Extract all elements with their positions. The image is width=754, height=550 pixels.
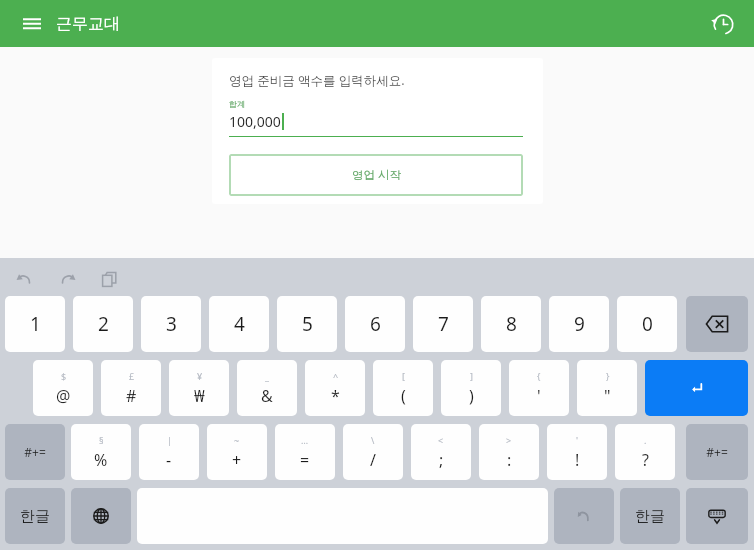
staticText: >: [506, 434, 512, 446]
staticText: |: [167, 434, 172, 446]
staticText: ₩: [194, 385, 205, 407]
staticText: 영업 준비금 액수를 입력하세요.: [229, 72, 405, 89]
staticText: ~: [234, 434, 240, 446]
button[interactable]: ]: [441, 360, 501, 416]
staticText: (: [401, 385, 406, 407]
staticText: 7: [438, 311, 449, 337]
button[interactable]: History: [702, 3, 744, 45]
staticText: ¥: [197, 370, 203, 382]
button[interactable]: 7: [413, 296, 473, 352]
staticText: 5: [302, 311, 313, 337]
button[interactable]: #+=: [5, 424, 65, 480]
button[interactable]: …: [275, 424, 335, 480]
button[interactable]: ^: [305, 360, 365, 416]
staticText: <: [438, 434, 444, 446]
staticText: #+=: [706, 444, 728, 460]
staticText: 합계: [229, 99, 245, 109]
staticText: :: [507, 449, 512, 471]
staticText: ;: [439, 449, 444, 471]
button[interactable]: .: [615, 424, 675, 480]
staticText: \: [371, 434, 375, 446]
button[interactable]: 2: [73, 296, 133, 352]
staticText: -: [166, 449, 172, 471]
staticText: *: [331, 385, 340, 407]
button[interactable]: 3: [141, 296, 201, 352]
staticText: &: [261, 385, 273, 407]
staticText: 1: [30, 311, 41, 337]
staticText: §: [99, 434, 104, 446]
staticText: 한글: [20, 507, 50, 526]
staticText: #+=: [24, 444, 46, 460]
staticText: $: [61, 370, 67, 382]
button[interactable]: £: [101, 360, 161, 416]
staticText: 0: [642, 311, 653, 337]
button[interactable]: 4: [209, 296, 269, 352]
staticText: _: [265, 370, 269, 382]
button[interactable]: {: [509, 360, 569, 416]
button[interactable]: }: [577, 360, 637, 416]
button[interactable]: >: [479, 424, 539, 480]
button[interactable]: Undo: [12, 266, 38, 292]
staticText: ?: [642, 449, 649, 471]
staticText: ]: [470, 370, 473, 382]
staticText: 6: [370, 311, 381, 337]
staticText: [: [402, 370, 405, 382]
staticText: /: [370, 449, 376, 471]
button[interactable]: ~: [207, 424, 267, 480]
button[interactable]: Change language: [71, 488, 131, 544]
button[interactable]: _: [237, 360, 297, 416]
button[interactable]: Undo: [554, 488, 614, 544]
button[interactable]: ': [547, 424, 607, 480]
staticText: 100,000: [229, 112, 281, 131]
button[interactable]: Copy: [96, 266, 122, 292]
staticText: .: [644, 434, 647, 446]
staticText: ': [537, 385, 541, 407]
button[interactable]: [: [373, 360, 433, 416]
staticText: 9: [574, 311, 585, 337]
button[interactable]: Backspace: [686, 296, 748, 352]
button[interactable]: 한글: [5, 488, 65, 544]
staticText: ^: [333, 370, 339, 382]
button[interactable]: \: [343, 424, 403, 480]
staticText: {: [537, 370, 541, 382]
staticText: 한글: [635, 507, 665, 526]
staticText: }: [606, 370, 610, 382]
button[interactable]: 6: [345, 296, 405, 352]
button[interactable]: $: [33, 360, 93, 416]
button[interactable]: 0: [617, 296, 677, 352]
button[interactable]: |: [139, 424, 199, 480]
staticText: 2: [98, 311, 109, 337]
button[interactable]: <: [411, 424, 471, 480]
button[interactable]: 8: [481, 296, 541, 352]
staticText: 근무교대: [56, 14, 120, 34]
button[interactable]: 영업 시작: [229, 154, 523, 196]
staticText: ": [604, 385, 611, 407]
button[interactable]: §: [71, 424, 131, 480]
staticText: %: [94, 449, 108, 471]
button[interactable]: Enter: [645, 360, 748, 416]
button[interactable]: #+=: [686, 424, 748, 480]
button[interactable]: 1: [5, 296, 65, 352]
button[interactable]: 5: [277, 296, 337, 352]
button[interactable]: ¥: [169, 360, 229, 416]
staticText: +: [232, 449, 242, 471]
button[interactable]: Hide keyboard: [686, 488, 748, 544]
staticText: =: [300, 449, 310, 471]
staticText: !: [575, 449, 580, 471]
button[interactable]: Menu: [12, 4, 52, 44]
staticText: #: [126, 385, 137, 407]
button[interactable]: 한글: [620, 488, 680, 544]
staticText: ): [469, 385, 474, 407]
staticText: 영업 시작: [352, 167, 401, 183]
button[interactable]: Redo: [54, 266, 80, 292]
staticText: £: [129, 370, 135, 382]
staticText: @: [56, 385, 71, 407]
button[interactable]: 9: [549, 296, 609, 352]
staticText: ': [576, 434, 579, 446]
staticText: 3: [166, 311, 177, 337]
staticText: …: [301, 434, 309, 446]
staticText: 8: [506, 311, 517, 337]
staticText: 4: [234, 311, 245, 337]
